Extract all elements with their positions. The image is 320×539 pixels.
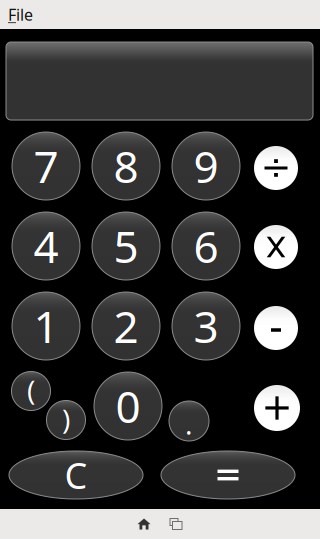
button[interactable]: 3 bbox=[172, 292, 240, 360]
staticText: 8 bbox=[113, 137, 138, 195]
button[interactable]: 9 bbox=[172, 132, 240, 200]
button[interactable]: Multiply bbox=[254, 225, 298, 269]
button[interactable]: 7 bbox=[12, 132, 80, 200]
staticText: 3 bbox=[193, 297, 218, 355]
button[interactable]: 2 bbox=[92, 292, 160, 360]
button[interactable]: 5 bbox=[92, 212, 160, 280]
button[interactable]: ( bbox=[11, 371, 50, 410]
staticText: 6 bbox=[193, 217, 218, 275]
staticText: . bbox=[185, 405, 193, 443]
staticText: 7 bbox=[33, 137, 58, 195]
staticText: File bbox=[8, 4, 33, 25]
button[interactable]: Divide bbox=[254, 146, 298, 190]
button[interactable]: C bbox=[9, 451, 143, 499]
staticText: 2 bbox=[113, 297, 138, 355]
button[interactable]: 8 bbox=[92, 132, 160, 200]
button[interactable]: Add bbox=[254, 385, 300, 431]
button[interactable]: . bbox=[169, 401, 209, 441]
button[interactable]: Subtract bbox=[254, 306, 298, 350]
button[interactable]: Home bbox=[129, 510, 158, 537]
button[interactable]: 6 bbox=[172, 212, 240, 280]
staticText: C bbox=[64, 451, 87, 499]
staticText: 9 bbox=[193, 137, 218, 195]
button[interactable]: 0 bbox=[94, 372, 162, 440]
button[interactable]: Task switcher bbox=[161, 510, 190, 538]
button[interactable]: ) bbox=[46, 400, 85, 439]
staticText: 1 bbox=[33, 297, 58, 355]
button[interactable]: 1 bbox=[12, 292, 80, 360]
staticText: 0 bbox=[115, 377, 140, 435]
staticText: ( bbox=[27, 371, 35, 409]
staticText: 4 bbox=[33, 217, 58, 275]
staticText: ) bbox=[62, 400, 70, 438]
staticText: 5 bbox=[113, 217, 138, 275]
button[interactable]: File bbox=[0, 0, 320, 29]
button[interactable]: 4 bbox=[12, 212, 80, 280]
button[interactable]: Equals bbox=[161, 451, 295, 499]
